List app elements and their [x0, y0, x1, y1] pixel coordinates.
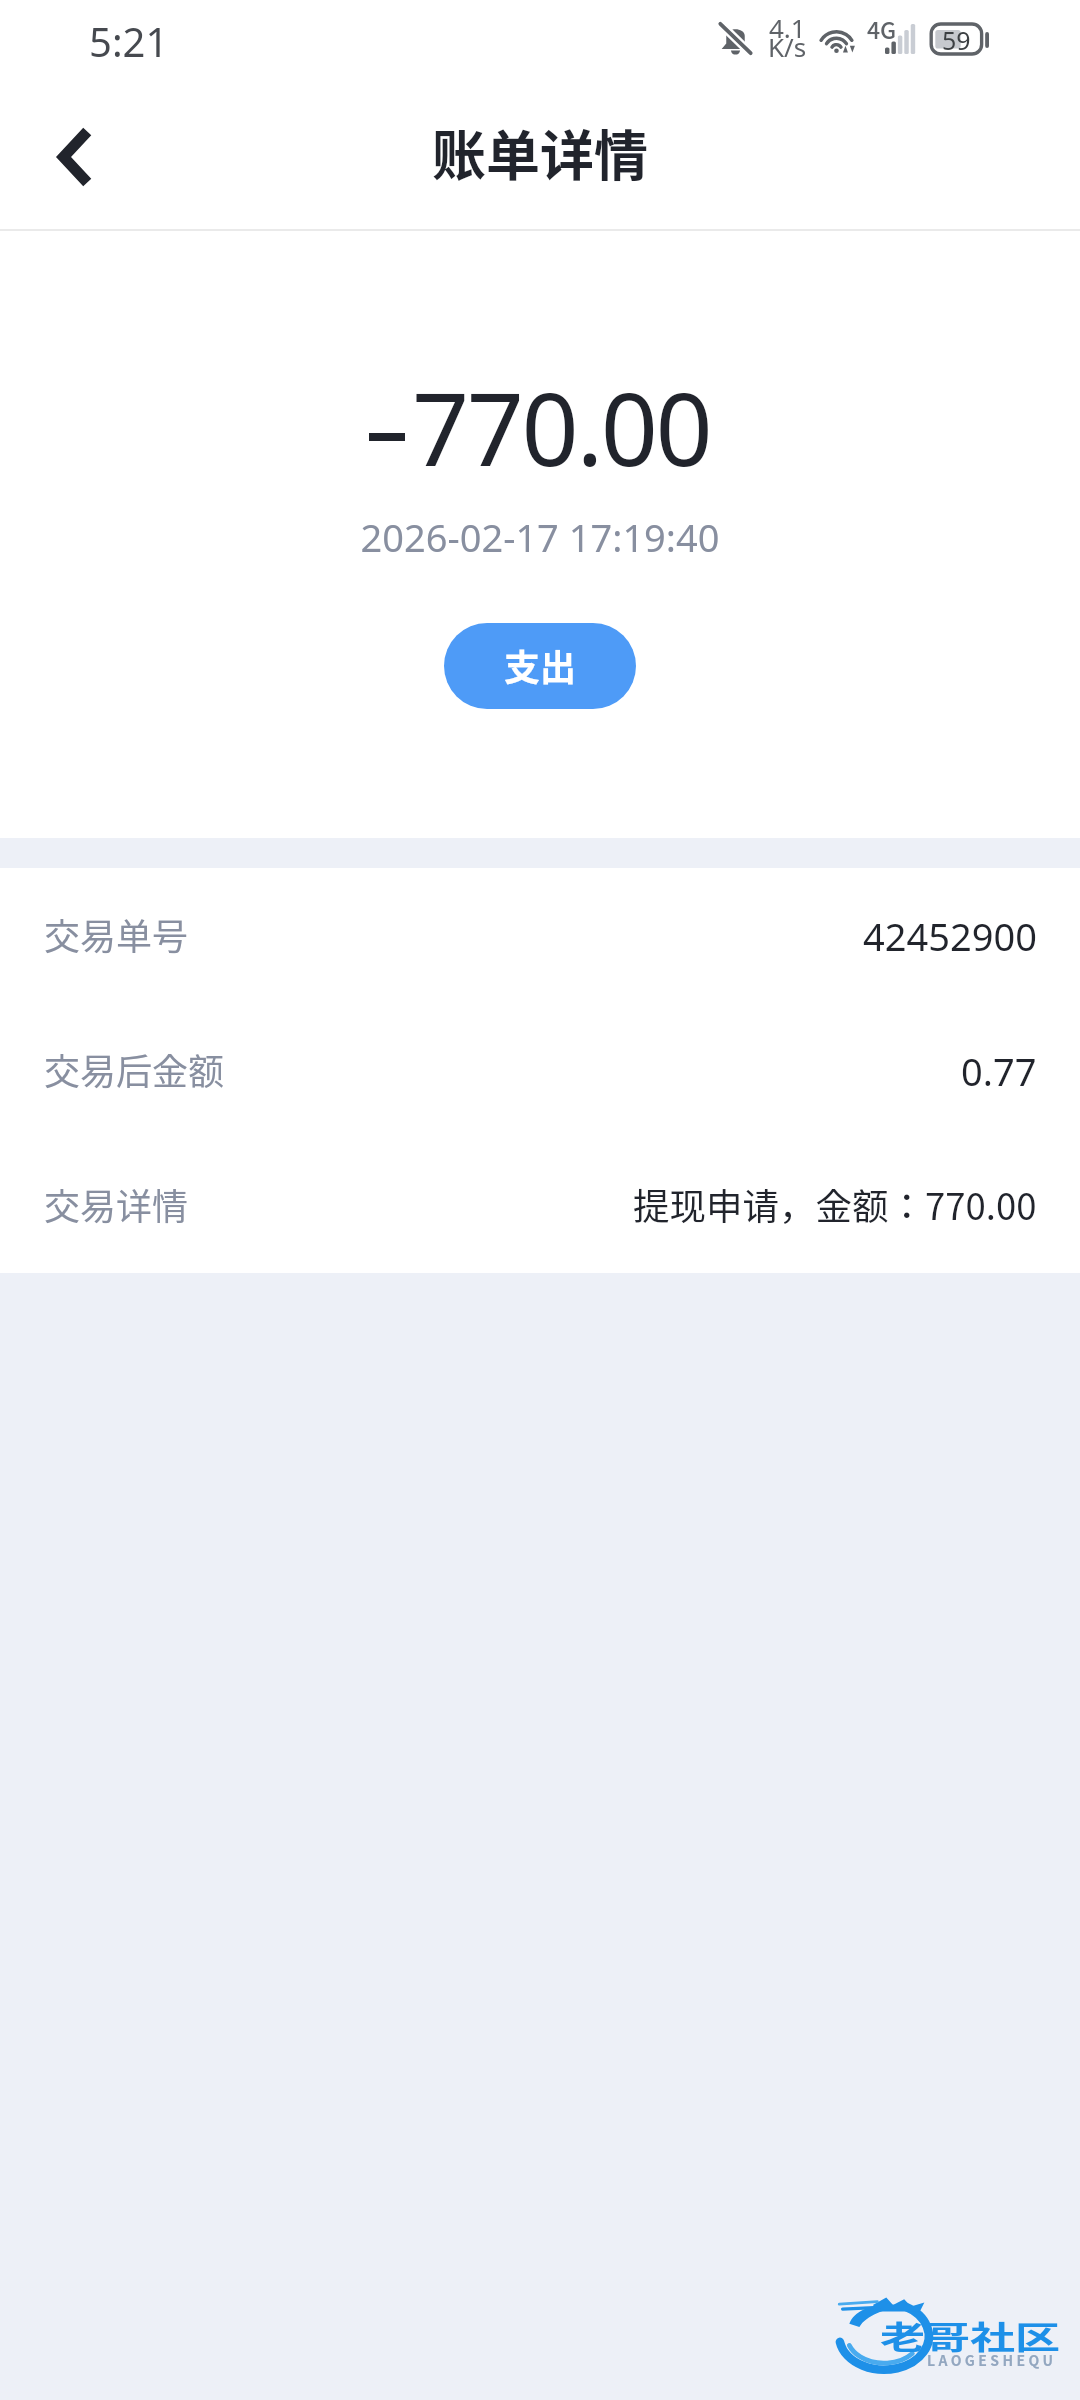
- staticText: 交易单号: [44, 908, 189, 960]
- button[interactable]: 交易后金额: [0, 1003, 1080, 1138]
- staticText: 提现申请，金额：770.00: [633, 1178, 1037, 1231]
- staticText: 0.77: [961, 1045, 1037, 1097]
- staticText: 账单详情: [432, 113, 648, 191]
- staticText: 4.1: [769, 10, 806, 45]
- staticText: 老哥社区: [880, 2313, 1061, 2358]
- staticText: 59: [942, 23, 971, 57]
- staticText: LAOGESHEQU: [927, 2350, 1057, 2370]
- staticText: 4G: [867, 12, 897, 45]
- staticText: 交易详情: [44, 1178, 189, 1230]
- staticText: 5:21: [89, 14, 169, 68]
- button[interactable]: 交易单号: [0, 868, 1080, 1003]
- staticText: 2026-02-17 17:19:40: [0, 511, 1080, 563]
- staticText: 770.00: [412, 359, 711, 495]
- button[interactable]: 支出: [444, 623, 636, 709]
- staticText: 交易后金额: [44, 1043, 225, 1095]
- staticText: 支出: [504, 639, 577, 691]
- button[interactable]: 交易详情: [0, 1138, 1080, 1273]
- button[interactable]: Back: [18, 102, 128, 212]
- staticText: 42452900: [863, 910, 1037, 962]
- staticText: K/s: [768, 29, 807, 64]
